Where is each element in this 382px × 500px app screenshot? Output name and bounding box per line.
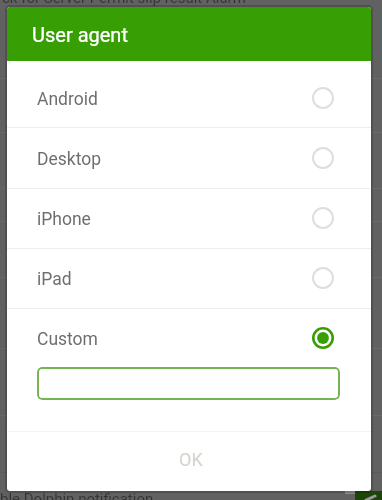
staticText: iPad: [37, 269, 72, 290]
staticText: Custom: [37, 329, 98, 350]
staticText: Desktop: [37, 149, 102, 170]
staticText: ble Dolphin notification: [0, 490, 154, 500]
button[interactable]: Desktop: [7, 128, 371, 188]
button[interactable]: iPhone: [7, 188, 371, 248]
button[interactable]: Android: [7, 68, 371, 128]
button[interactable]: iPad: [7, 248, 371, 308]
staticText: User agent: [32, 23, 128, 46]
staticText: Android: [37, 89, 98, 110]
staticText: ck for Server Permit slip result Alarm: [2, 0, 246, 7]
button[interactable]: [37, 367, 340, 400]
button[interactable]: Custom: [7, 308, 371, 368]
staticText: iPhone: [37, 209, 91, 230]
staticText: OK: [179, 449, 203, 470]
button[interactable]: OK: [7, 432, 371, 491]
